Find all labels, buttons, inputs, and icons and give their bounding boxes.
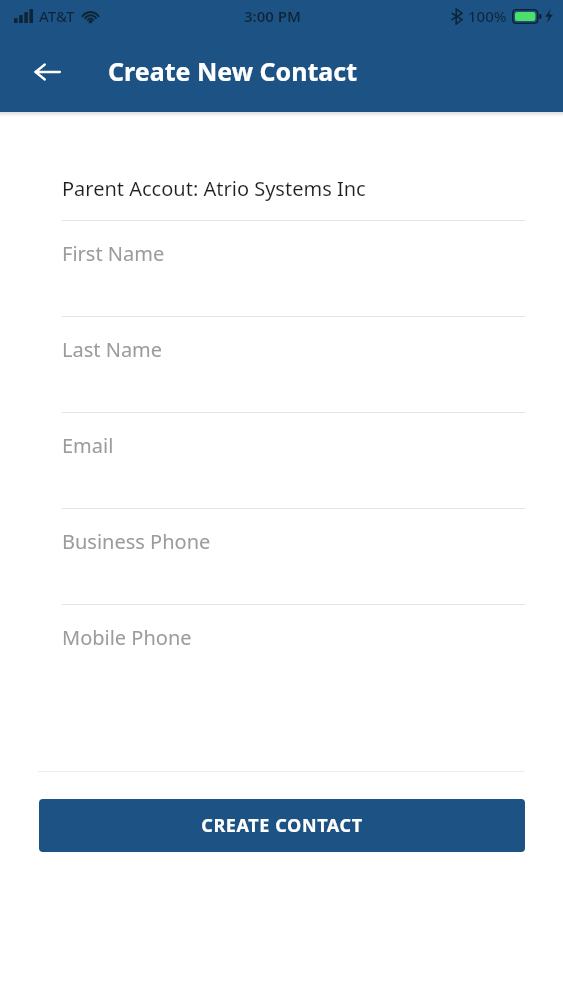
staticText: Parent Accout: Atrio Systems Inc [62, 175, 366, 202]
staticText: CREATE CONTACT [201, 813, 363, 838]
button[interactable]: First Name [0, 220, 563, 316]
staticText: Mobile Phone [62, 624, 192, 651]
button[interactable]: Mobile Phone [0, 604, 563, 700]
button[interactable]: Back [23, 48, 71, 96]
staticText: Last Name [62, 336, 163, 363]
button[interactable]: Email [0, 412, 563, 508]
staticText: AT&T [39, 6, 75, 26]
staticText: Create New Contact [108, 54, 358, 88]
staticText: Business Phone [62, 528, 211, 555]
button[interactable]: CREATE CONTACT [39, 799, 525, 852]
staticText: First Name [62, 240, 165, 267]
button[interactable]: Business Phone [0, 508, 563, 604]
staticText: 100% [468, 6, 507, 26]
button[interactable]: Last Name [0, 316, 563, 412]
staticText: Email [62, 432, 114, 459]
staticText: 3:00 PM [244, 6, 301, 26]
